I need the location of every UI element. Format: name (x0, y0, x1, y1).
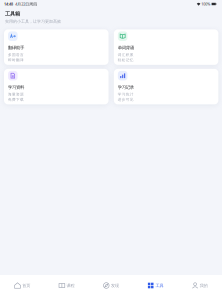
staticText: 学习记录 (118, 84, 134, 90)
staticText: 首页 (22, 283, 30, 288)
staticText: 学习统计 (118, 92, 134, 96)
staticText: 翻译助手 (8, 45, 24, 50)
staticText: 轻松记忆 (118, 58, 134, 62)
staticText: 免费下载 (8, 97, 24, 102)
staticText: 进步可见 (118, 97, 134, 102)
staticText: 4月22日周四 (15, 1, 37, 7)
staticText: 单词背诵 (118, 45, 134, 50)
staticText: 工具箱 (5, 10, 20, 17)
staticText: 我的 (200, 283, 208, 288)
button[interactable]: 发现 (89, 275, 133, 296)
button[interactable]: 单词背诵 (114, 29, 218, 65)
button[interactable]: 学习资料 (4, 69, 109, 104)
staticText: 发现 (111, 283, 119, 288)
button[interactable]: 翻译助手 (4, 29, 109, 65)
staticText: 海量资源 (8, 92, 24, 96)
staticText: 课程 (67, 283, 75, 288)
button[interactable]: 学习记录 (114, 69, 218, 104)
staticText: 100% (201, 1, 210, 7)
button[interactable]: 首页 (0, 275, 44, 296)
staticText: 即时翻译 (8, 58, 24, 62)
staticText: 工具 (155, 283, 163, 288)
button[interactable]: 课程 (44, 275, 89, 296)
button[interactable]: 我的 (178, 275, 222, 296)
staticText: 14:48 (4, 1, 13, 7)
staticText: 实用的小工具，让学习更加高效 (5, 19, 61, 24)
staticText: 词汇积累 (118, 52, 134, 57)
button[interactable]: 工具 (133, 275, 178, 296)
staticText: 多国语言 (8, 52, 24, 57)
staticText: 学习资料 (8, 84, 24, 90)
